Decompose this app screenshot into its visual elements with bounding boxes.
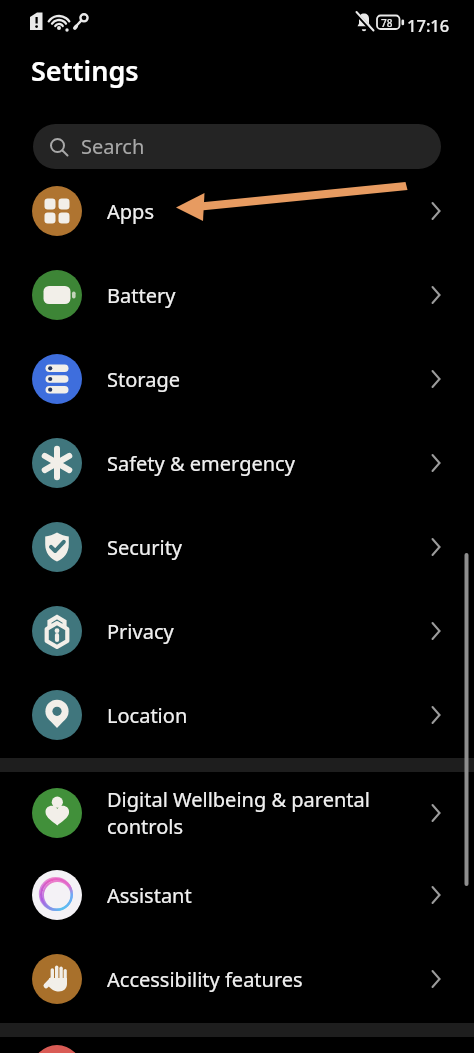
staticText: Privacy (107, 618, 431, 645)
staticText: Accessibility features (107, 966, 431, 993)
staticText: Storage (107, 366, 431, 393)
staticText: 78 (381, 16, 393, 30)
staticText: Settings (31, 52, 139, 89)
staticText: Location (107, 702, 431, 729)
staticText: Apps (107, 198, 431, 225)
staticText: Security (107, 534, 431, 561)
staticText: 17:16 (407, 14, 450, 36)
staticText: Safety & emergency (107, 450, 431, 477)
staticText: Digital Wellbeing & parental controls (107, 786, 431, 840)
staticText: Search (81, 133, 145, 160)
staticText: Assistant (107, 882, 431, 909)
staticText: Battery (107, 282, 431, 309)
